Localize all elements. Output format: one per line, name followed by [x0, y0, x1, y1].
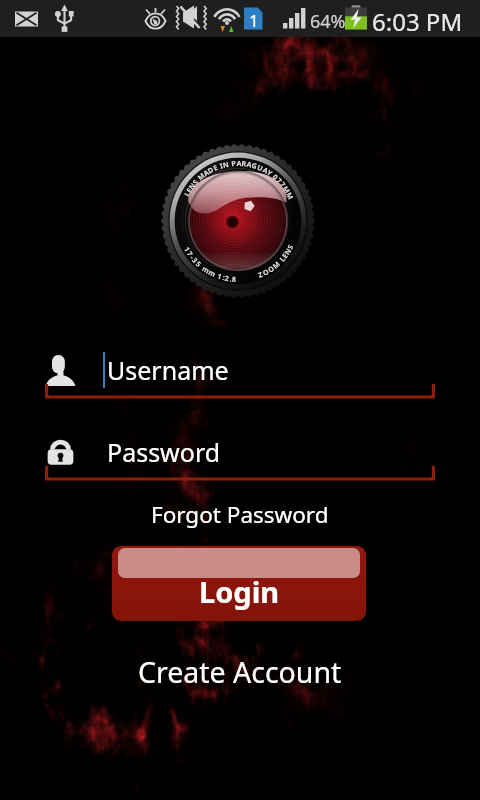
staticText: 1 — [249, 9, 259, 32]
button[interactable]: Username — [0, 348, 480, 400]
staticText: 6:03 PM — [372, 5, 463, 38]
staticText: Password — [107, 435, 221, 469]
button[interactable]: Login — [112, 546, 366, 621]
button[interactable]: Forgot Password — [0, 494, 480, 534]
staticText: Forgot Password — [151, 499, 329, 530]
button[interactable]: Password — [0, 430, 480, 482]
button[interactable]: Create Account — [0, 650, 480, 694]
staticText: 64% — [310, 9, 346, 34]
staticText: Username — [107, 353, 229, 387]
staticText: Create Account — [138, 653, 342, 692]
staticText: Login — [199, 572, 280, 611]
